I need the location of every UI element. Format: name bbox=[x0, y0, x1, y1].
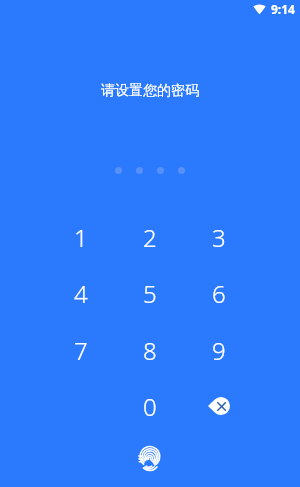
button[interactable]: 1 bbox=[47, 210, 115, 264]
button[interactable]: 7 bbox=[47, 323, 115, 377]
staticText: 7 bbox=[74, 334, 88, 367]
button[interactable]: 3 bbox=[185, 210, 253, 264]
staticText: 0 bbox=[143, 390, 157, 423]
staticText: 请设置您的密码 bbox=[101, 82, 199, 100]
staticText: 9:14 bbox=[271, 1, 295, 17]
staticText: 9 bbox=[212, 334, 226, 367]
staticText: 3 bbox=[212, 221, 226, 254]
button[interactable]: 9 bbox=[185, 323, 253, 377]
button[interactable]: 5 bbox=[116, 266, 184, 320]
staticText: 8 bbox=[143, 334, 157, 367]
button[interactable]: 8 bbox=[116, 323, 184, 377]
staticText: 1 bbox=[74, 221, 88, 254]
button[interactable]: 4 bbox=[47, 266, 115, 320]
staticText: 2 bbox=[143, 221, 157, 254]
button[interactable]: Fingerprint unlock bbox=[129, 438, 169, 478]
button[interactable]: Delete bbox=[185, 379, 253, 433]
button[interactable]: 2 bbox=[116, 210, 184, 264]
button[interactable]: 0 bbox=[116, 379, 184, 433]
staticText: 5 bbox=[143, 277, 157, 310]
staticText: 4 bbox=[74, 277, 88, 310]
button[interactable]: 6 bbox=[185, 266, 253, 320]
staticText: 6 bbox=[212, 277, 226, 310]
